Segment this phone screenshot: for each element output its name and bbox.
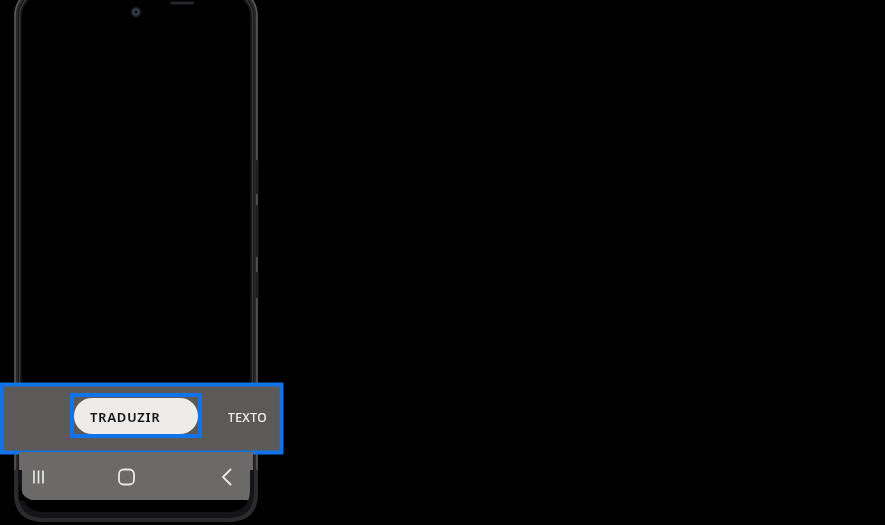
button[interactable]: TRADUZIR (74, 398, 198, 434)
button[interactable]: Back (175, 452, 253, 501)
staticText: TRADUZIR (90, 408, 161, 426)
button[interactable]: Home (97, 452, 175, 501)
button[interactable]: TEXTO (228, 409, 268, 425)
button[interactable]: Recents (19, 452, 97, 501)
button[interactable]: TEXTO (0, 386, 281, 451)
